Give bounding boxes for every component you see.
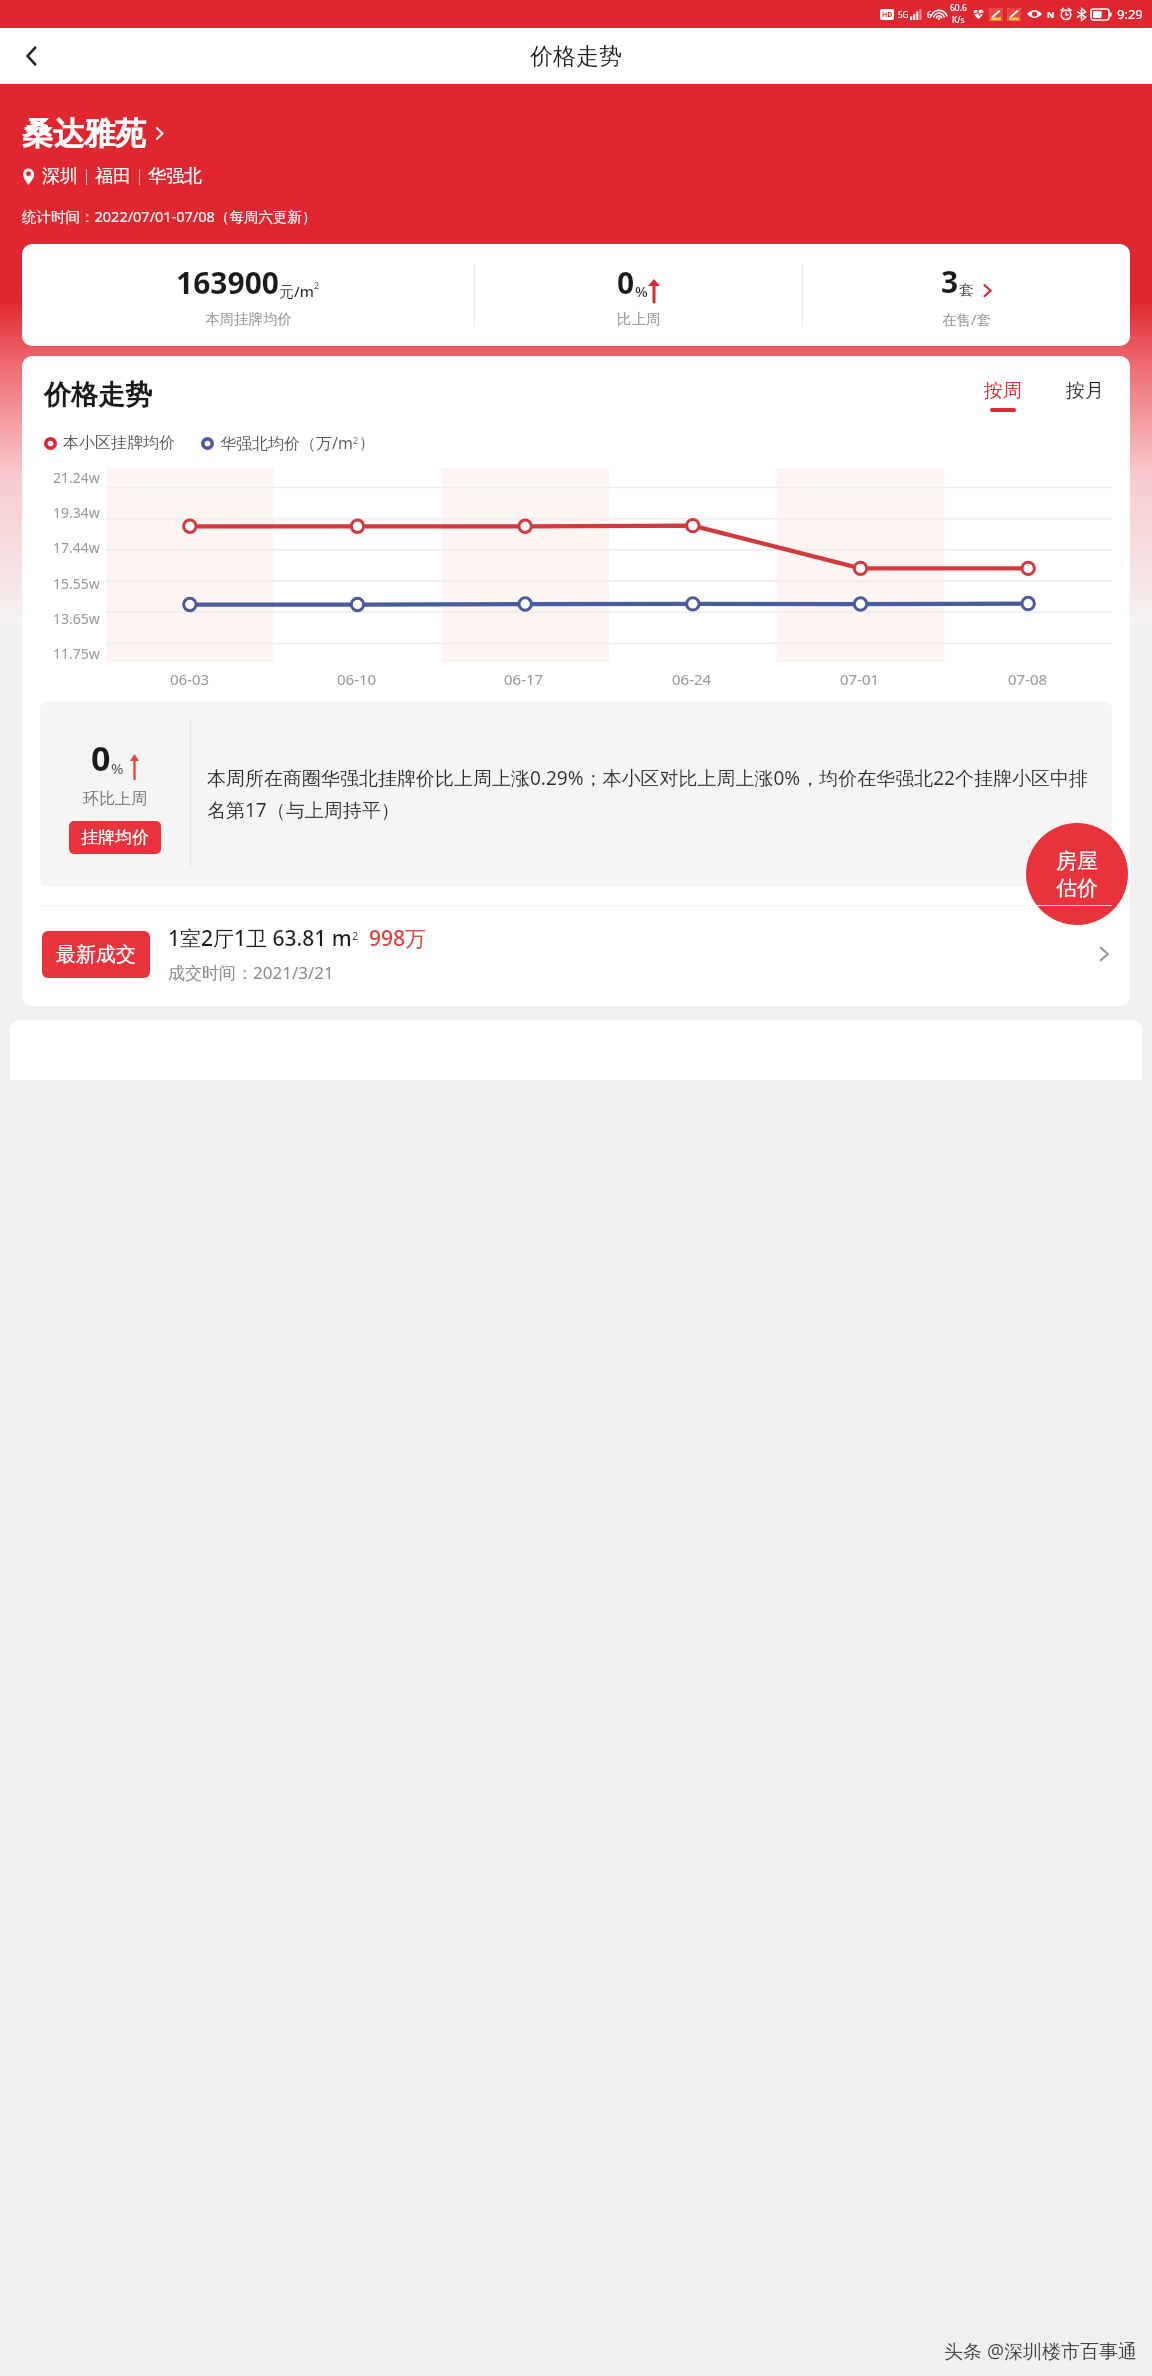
button[interactable]: 按周 — [980, 379, 1026, 412]
staticText: 07-01 — [840, 669, 880, 689]
staticText: 3 — [941, 261, 959, 302]
button[interactable]: 房屋 估价 — [1026, 823, 1128, 925]
staticText: 163900 — [176, 262, 279, 303]
button[interactable]: 最新成交 — [22, 906, 1130, 996]
staticText: 本周所在商圈华强北挂牌价比上周上涨0.29%；本小区对比上周上涨0%，均价在华强… — [207, 765, 1098, 823]
staticText: 环比上周 — [83, 789, 147, 809]
button[interactable]: 挂牌均价 — [69, 821, 161, 854]
staticText: 0 — [617, 262, 635, 303]
staticText: 11.75w — [53, 644, 100, 663]
staticText: 6 — [927, 9, 932, 20]
staticText: 1室2厅1卫 63.81 m — [168, 924, 352, 953]
staticText: 21.24w — [53, 468, 100, 487]
button[interactable]: 3 — [803, 261, 1130, 329]
staticText: 06-03 — [170, 669, 210, 689]
staticText: 06-24 — [672, 669, 712, 689]
staticText: 最新成交 — [56, 942, 136, 967]
staticText: 60.6 — [950, 2, 967, 14]
staticText: HD — [882, 10, 893, 20]
staticText: 0 — [91, 735, 111, 781]
staticText: 深圳 — [42, 165, 78, 188]
staticText: N — [1047, 8, 1055, 20]
button[interactable]: 桑达雅苑 — [22, 114, 167, 153]
staticText: 本小区挂牌均价 — [63, 433, 175, 453]
staticText: 2 — [353, 434, 359, 446]
staticText: 本周挂牌均价 — [205, 310, 292, 328]
staticText: 房屋 估价 — [1056, 848, 1098, 901]
staticText: 按周 — [984, 379, 1022, 403]
staticText: 元/m — [279, 281, 314, 301]
staticText: 福田 — [95, 165, 131, 188]
staticText: 比上周 — [617, 310, 661, 328]
staticText: 5G — [898, 9, 909, 20]
staticText: 06-17 — [504, 669, 544, 689]
button[interactable]: Back — [8, 32, 56, 80]
staticText: 13.65w — [53, 609, 100, 628]
staticText: 桑达雅苑 — [22, 114, 146, 153]
staticText: % — [111, 758, 124, 778]
staticText: 2 — [314, 279, 320, 291]
staticText: 套 — [959, 281, 974, 300]
staticText: 15.55w — [53, 574, 100, 593]
button[interactable]: 0 — [475, 262, 802, 328]
staticText: 998万 — [369, 924, 427, 953]
staticText: 17.44w — [53, 538, 100, 557]
staticText: ） — [359, 433, 375, 453]
staticText: 价格走势 — [530, 42, 622, 71]
staticText: 06-10 — [337, 669, 377, 689]
staticText: 2 — [352, 928, 359, 943]
staticText: 华强北均价（万/m — [220, 432, 353, 454]
button[interactable]: 163900 — [22, 262, 474, 328]
staticText: 价格走势 — [44, 378, 152, 412]
staticText: 9:29 — [1117, 5, 1143, 23]
staticText: 在售/套 — [942, 309, 991, 329]
staticText: 按月 — [1066, 379, 1104, 403]
staticText: % — [635, 281, 648, 301]
staticText: 华强北 — [148, 165, 202, 188]
staticText: 07-08 — [1008, 669, 1048, 689]
staticText: 19.34w — [53, 503, 100, 522]
button[interactable]: 按月 — [1062, 379, 1108, 412]
staticText: 挂牌均价 — [81, 827, 149, 848]
staticText: K/s — [952, 14, 965, 26]
staticText: 统计时间：2022/07/01-07/08（每周六更新） — [22, 206, 317, 226]
staticText: 头条 @深圳楼市百事通 — [944, 2338, 1138, 2364]
staticText: 成交时间：2021/3/21 — [168, 961, 334, 984]
